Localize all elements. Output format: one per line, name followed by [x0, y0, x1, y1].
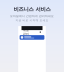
staticText: 모바일에서 간편하게 관리하세요	[10, 15, 54, 18]
staticText: 계정 관리	[23, 29, 29, 35]
staticText: 비즈니스 서비스	[13, 6, 50, 13]
staticText: 지금 바로 시작해 보세요	[15, 19, 48, 22]
